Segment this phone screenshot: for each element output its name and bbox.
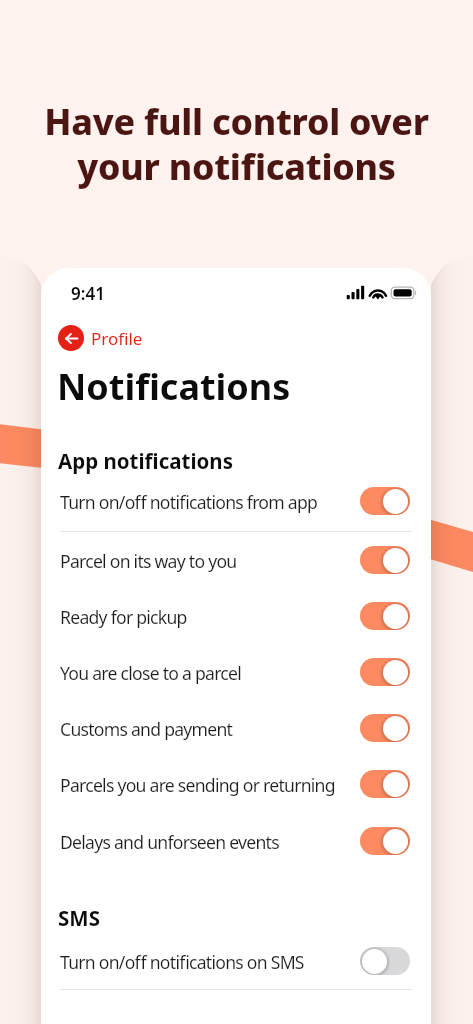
staticText: Parcel on its way to you [60,549,237,573]
staticText: 9:41 [71,282,105,305]
button[interactable]: You are close to a parcel [41,644,431,700]
button[interactable]: Delays and unforseen events [41,813,431,869]
staticText: Customs and payment [60,717,233,741]
button[interactable]: Customs and payment [41,700,431,756]
staticText: Profile [91,327,143,350]
staticText: Notifications [57,362,291,411]
staticText: SMS [58,904,100,932]
button[interactable]: Parcel on its way to you [41,532,431,588]
other: Status icons [345,285,423,301]
staticText: You are close to a parcel [60,661,242,685]
other: Back [58,325,84,351]
button[interactable]: Ready for pickup [41,588,431,644]
button[interactable]: Parcels you are sending or returning [41,756,431,812]
staticText: Turn on/off notifications from app [60,490,318,514]
button[interactable]: Turn on/off notifications on SMS [41,933,431,989]
staticText: Delays and unforseen events [60,830,279,854]
staticText: App notifications [58,447,233,475]
button[interactable]: Back [58,325,143,351]
button[interactable]: Turn on/off notifications from app [41,473,431,529]
staticText: Turn on/off notifications on SMS [60,950,304,974]
staticText: Parcels you are sending or returning [60,773,335,797]
staticText: Have full control over your notification… [0,97,473,191]
staticText: Ready for pickup [60,605,187,629]
